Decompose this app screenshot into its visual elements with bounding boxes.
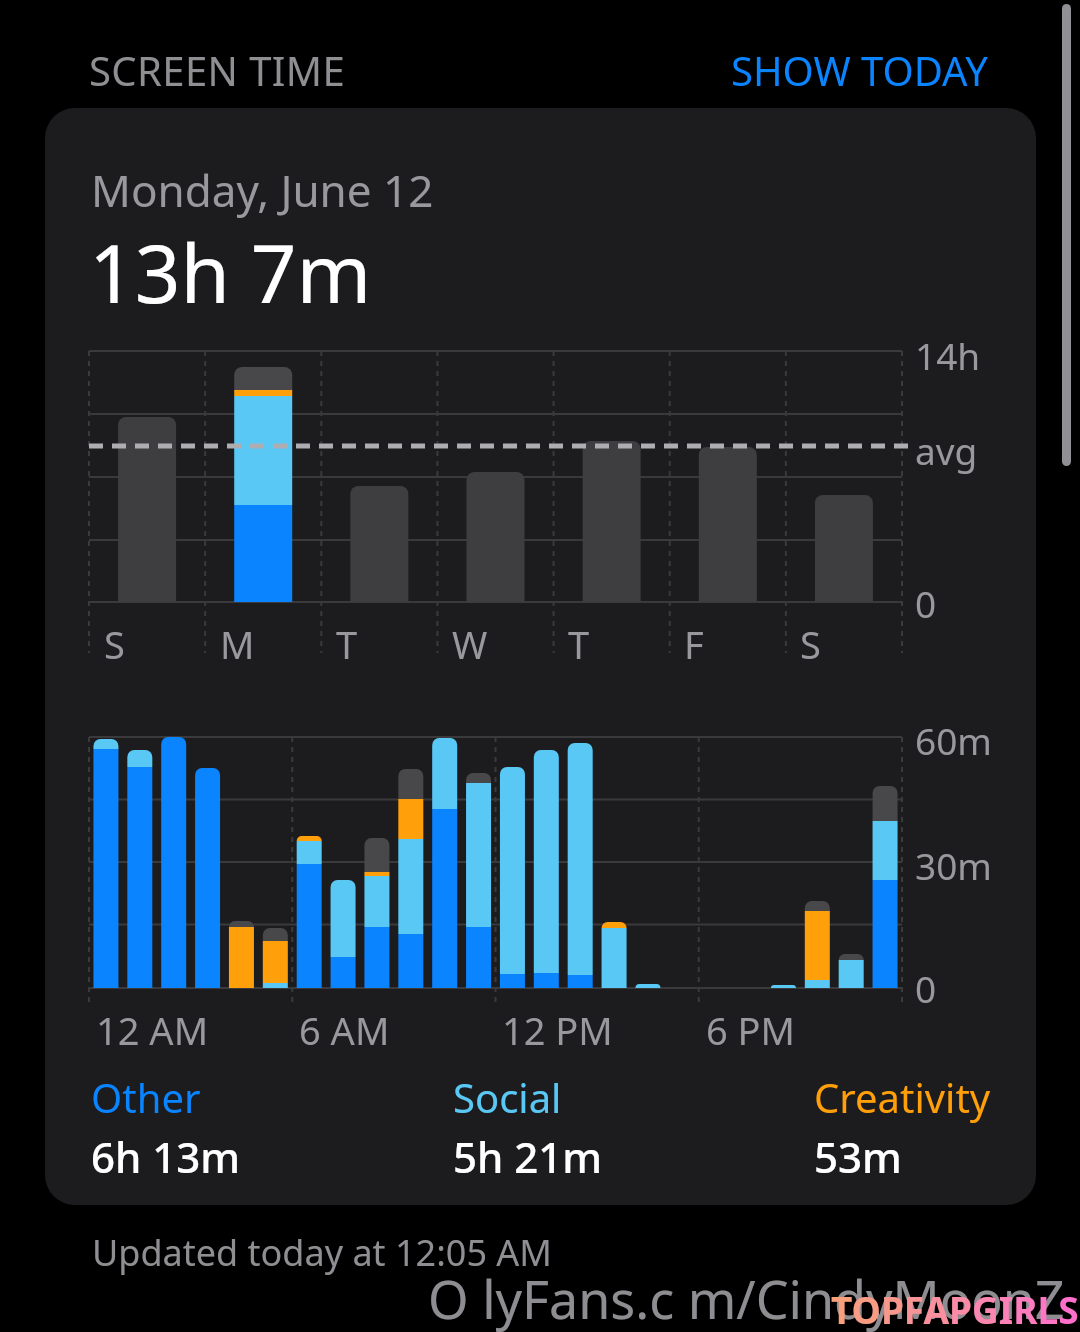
staticText: M bbox=[220, 618, 255, 670]
button[interactable]: Monday, June 12 bbox=[45, 108, 1036, 1205]
staticText: SHOW TODAY bbox=[731, 43, 988, 97]
staticText: 30m bbox=[915, 840, 992, 890]
staticText: 5h 21m bbox=[453, 1128, 603, 1185]
staticText: 13h 7m bbox=[89, 217, 372, 326]
button[interactable]: SCREEN TIME bbox=[89, 43, 346, 97]
button[interactable]: SHOW TODAY bbox=[600, 43, 988, 97]
staticText: Social bbox=[453, 1070, 562, 1124]
staticText: 6 PM bbox=[706, 1004, 796, 1056]
staticText: Creativity bbox=[814, 1070, 991, 1124]
staticText: 14h bbox=[915, 330, 981, 380]
staticText: F bbox=[684, 618, 704, 670]
staticText: 60m bbox=[915, 715, 992, 765]
staticText: avg bbox=[915, 425, 978, 475]
staticText: SCREEN TIME bbox=[89, 43, 346, 97]
staticText: Monday, June 12 bbox=[91, 160, 434, 220]
staticText: 0 bbox=[915, 578, 937, 628]
staticText: 12 PM bbox=[502, 1004, 613, 1056]
staticText: W bbox=[452, 618, 488, 670]
staticText: T bbox=[336, 618, 358, 670]
staticText: Updated today at 12:05 AM bbox=[92, 1228, 553, 1277]
staticText: Other bbox=[91, 1070, 201, 1124]
staticText: T bbox=[568, 618, 590, 670]
staticText: 6h 13m bbox=[91, 1128, 241, 1185]
staticText: 53m bbox=[814, 1128, 902, 1185]
staticText: 6 AM bbox=[299, 1004, 390, 1056]
staticText: TOPFAPGIRLS bbox=[831, 1284, 1079, 1332]
staticText: O lyFans.c m/CindyMoonZ bbox=[428, 1263, 1065, 1332]
staticText: S bbox=[104, 618, 125, 670]
staticText: 12 AM bbox=[96, 1004, 209, 1056]
staticText: S bbox=[800, 618, 821, 670]
staticText: 0 bbox=[915, 963, 937, 1013]
